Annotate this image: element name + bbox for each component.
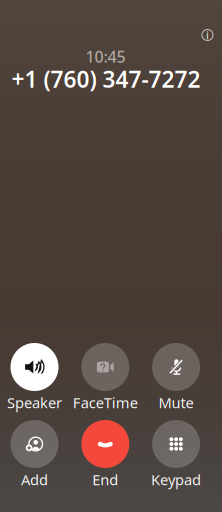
staticText: i [206,28,209,42]
staticText: +1 (760) 347-7272 [11,64,200,94]
button[interactable]: Speaker [0,343,70,411]
staticText: Speaker [7,393,62,412]
staticText: Keypad [151,470,201,489]
staticText: FaceTime [73,393,138,412]
staticText: 10:45 [85,46,125,67]
button[interactable]: Add [0,420,70,488]
button[interactable]: Mute [140,343,212,411]
button[interactable]: End [69,420,141,488]
staticText: Mute [159,393,194,412]
staticText: Add [21,470,48,489]
button[interactable]: FaceTime [69,343,141,411]
button[interactable]: Call info [196,24,218,46]
button[interactable]: Keypad [140,420,212,488]
staticText: End [92,470,118,489]
